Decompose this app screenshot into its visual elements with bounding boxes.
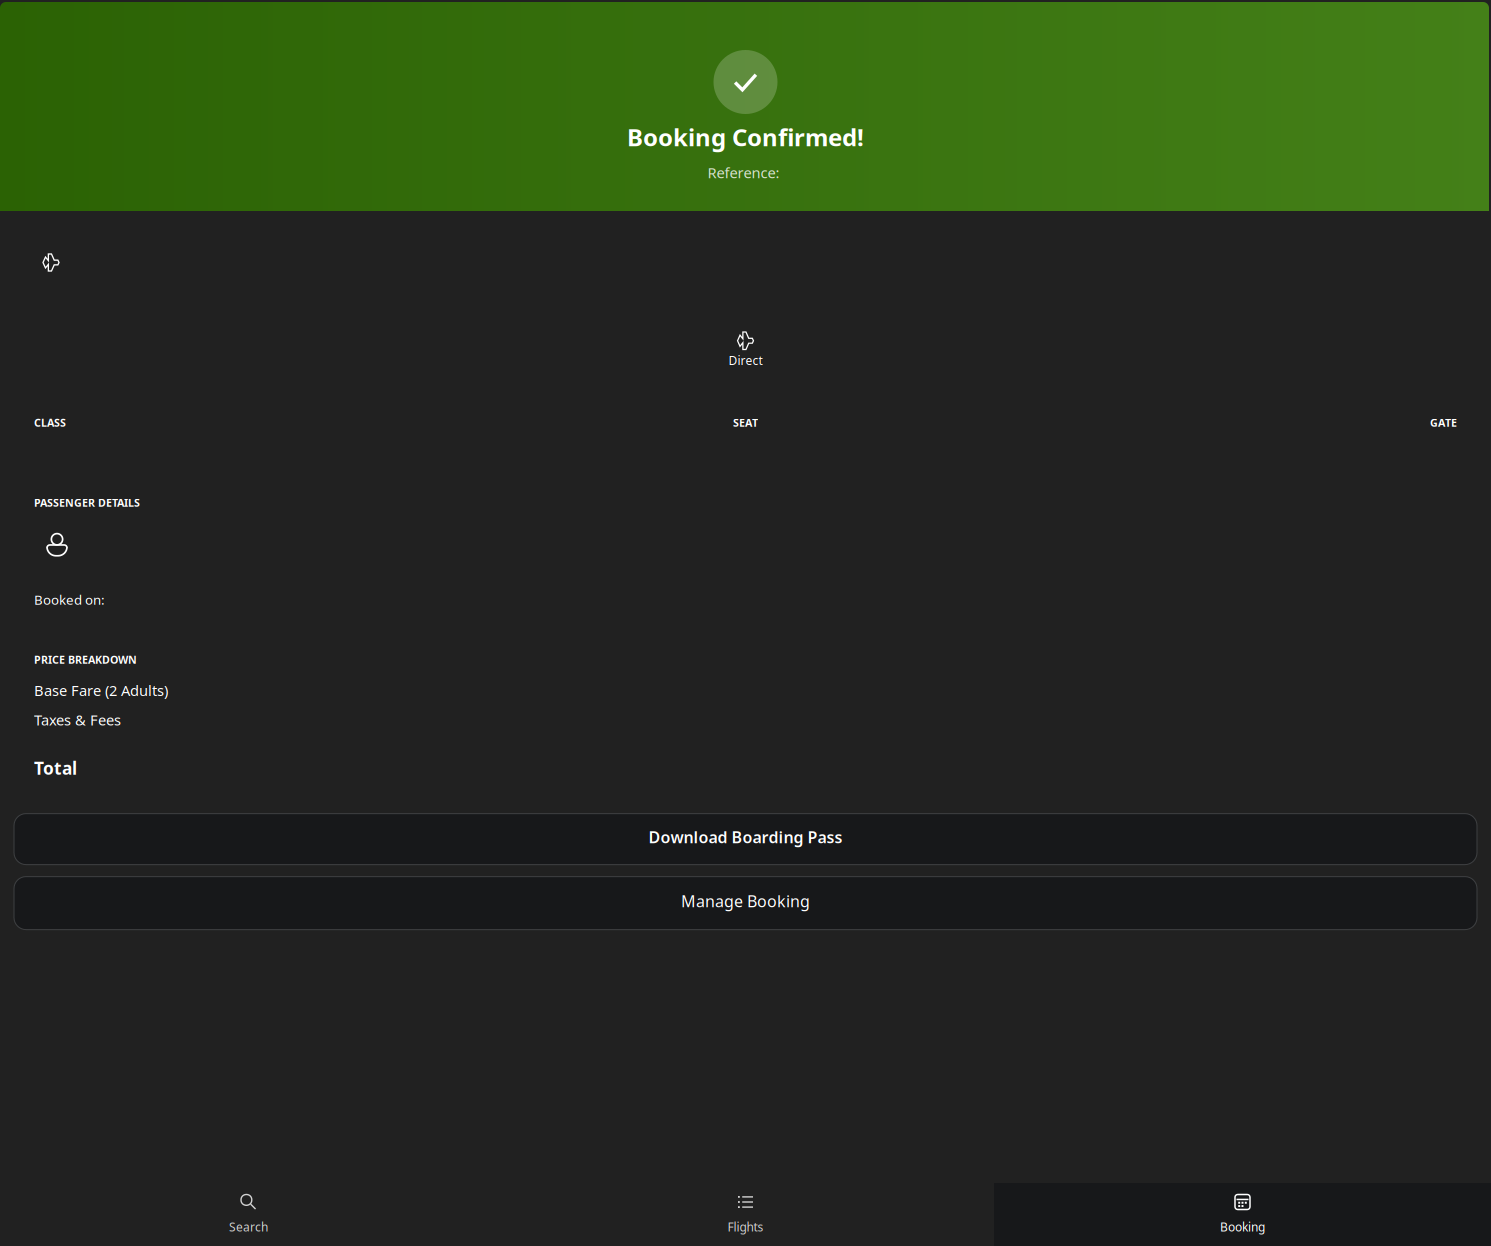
staticText: PASSENGER DETAILS	[34, 496, 140, 510]
staticText: Booking	[1220, 1219, 1265, 1235]
staticText: Direct	[728, 352, 762, 368]
staticText: SEAT	[733, 415, 758, 430]
staticText: Taxes & Fees	[34, 710, 121, 730]
button[interactable]: Manage Booking	[14, 877, 1477, 930]
staticText: Total	[34, 757, 77, 780]
staticText: PRICE BREAKDOWN	[34, 652, 137, 667]
staticText: GATE	[1430, 415, 1457, 430]
staticText: Manage Booking	[681, 890, 810, 912]
button[interactable]: Download Boarding Pass	[14, 814, 1477, 865]
staticText: Booked on:	[34, 591, 105, 608]
staticText: Download Boarding Pass	[648, 826, 842, 848]
staticText: CLASS	[34, 415, 66, 430]
staticText: Base Fare (2 Adults)	[34, 681, 168, 700]
staticText: Reference:	[707, 163, 783, 182]
button[interactable]: Search	[0, 1183, 497, 1246]
button[interactable]: Booking	[994, 1183, 1491, 1246]
staticText: Search	[229, 1219, 268, 1235]
staticText: Booking Confirmed!	[627, 121, 864, 153]
staticText: Flights	[727, 1219, 763, 1235]
button[interactable]: Flights	[497, 1183, 994, 1246]
